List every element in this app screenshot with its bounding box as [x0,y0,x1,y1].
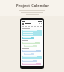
button[interactable] [22,63,41,65]
button[interactable] [22,30,42,36]
button[interactable] [24,45,37,47]
button[interactable] [22,50,41,52]
button[interactable] [22,56,42,59]
button[interactable] [22,60,37,62]
button[interactable] [24,53,34,55]
staticText: Project Calendar [16,3,49,8]
button[interactable] [22,42,40,44]
button[interactable] [22,37,34,39]
